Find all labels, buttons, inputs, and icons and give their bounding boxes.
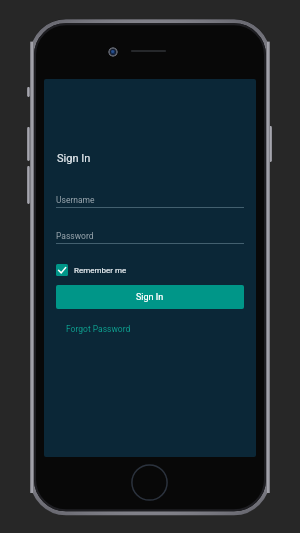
button[interactable]: Forgot Password <box>66 324 131 334</box>
staticText: Username <box>56 195 95 205</box>
staticText: Remember me <box>74 266 127 275</box>
staticText: Password <box>56 231 94 241</box>
button[interactable]: Remember me <box>56 264 127 276</box>
button[interactable]: Sign In <box>56 285 244 309</box>
staticText: Sign In <box>57 152 91 165</box>
staticText: Sign In <box>136 292 164 303</box>
staticText: Forgot Password <box>66 324 131 334</box>
